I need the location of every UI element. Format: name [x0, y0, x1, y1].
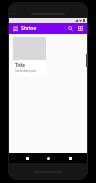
button[interactable]: Change view — [76, 25, 87, 32]
button[interactable]: Back — [23, 154, 31, 162]
button[interactable]: Title — [13, 37, 46, 76]
button[interactable]: Home — [44, 154, 52, 162]
button[interactable]: Open navigation menu — [9, 26, 21, 32]
button[interactable]: Search — [65, 25, 76, 32]
staticText: Title — [15, 62, 25, 68]
staticText: Shrine — [21, 25, 37, 32]
button[interactable]: Recent apps — [66, 154, 74, 162]
staticText: Secondary text — [15, 69, 36, 73]
